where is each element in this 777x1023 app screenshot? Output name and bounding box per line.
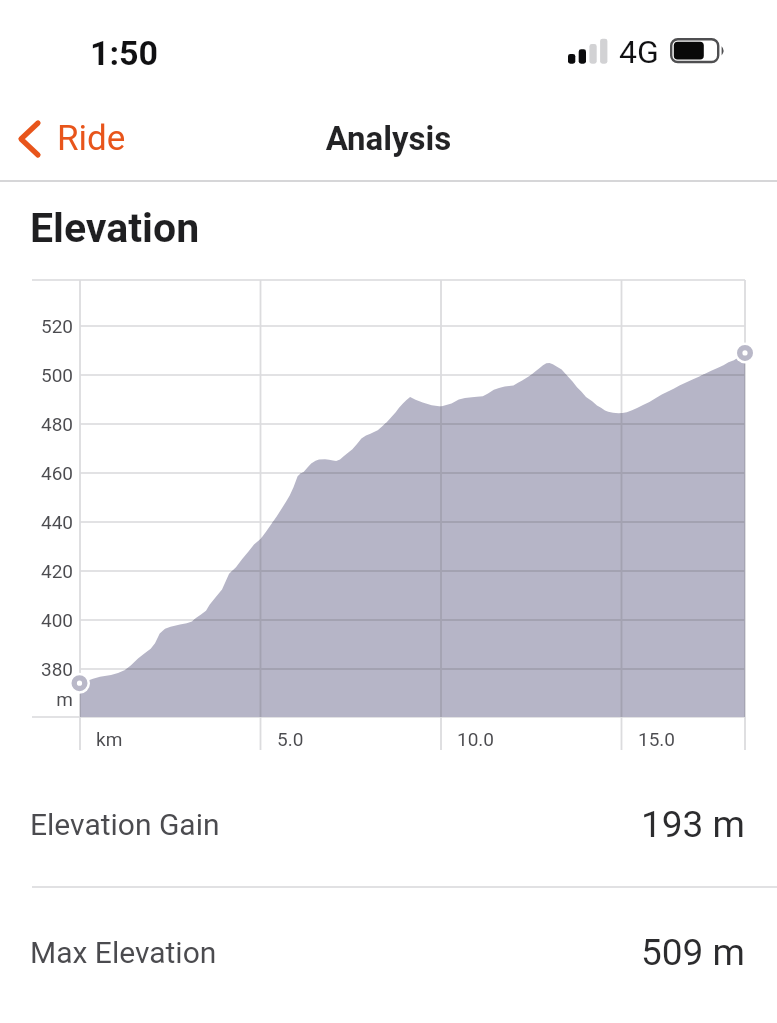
button[interactable]: Elevation Gain xyxy=(0,784,777,864)
other: Back xyxy=(18,120,41,158)
staticText: 193 m xyxy=(641,803,746,846)
staticText: Elevation Gain xyxy=(30,807,220,842)
staticText: 5.0 xyxy=(277,728,304,750)
staticText: 500 xyxy=(0,364,73,386)
staticText: 440 xyxy=(0,511,73,533)
staticText: 1:50 xyxy=(90,33,159,73)
staticText: Ride xyxy=(57,118,126,159)
staticText: Analysis xyxy=(0,119,777,158)
staticText: 380 xyxy=(0,658,73,680)
button[interactable]: Max Elevation xyxy=(0,912,777,992)
staticText: 400 xyxy=(0,609,73,631)
staticText: 460 xyxy=(0,462,73,484)
staticText: Elevation xyxy=(30,204,200,252)
staticText: m xyxy=(0,688,73,710)
staticText: 10.0 xyxy=(457,728,495,750)
staticText: 520 xyxy=(0,315,73,337)
staticText: 15.0 xyxy=(638,728,676,750)
button[interactable]: Back xyxy=(8,112,140,165)
staticText: Max Elevation xyxy=(30,935,217,970)
staticText: 480 xyxy=(0,413,73,435)
staticText: 420 xyxy=(0,560,73,582)
staticText: km xyxy=(96,728,123,750)
staticText: 509 m xyxy=(641,931,746,974)
staticText: 4G xyxy=(619,33,659,71)
